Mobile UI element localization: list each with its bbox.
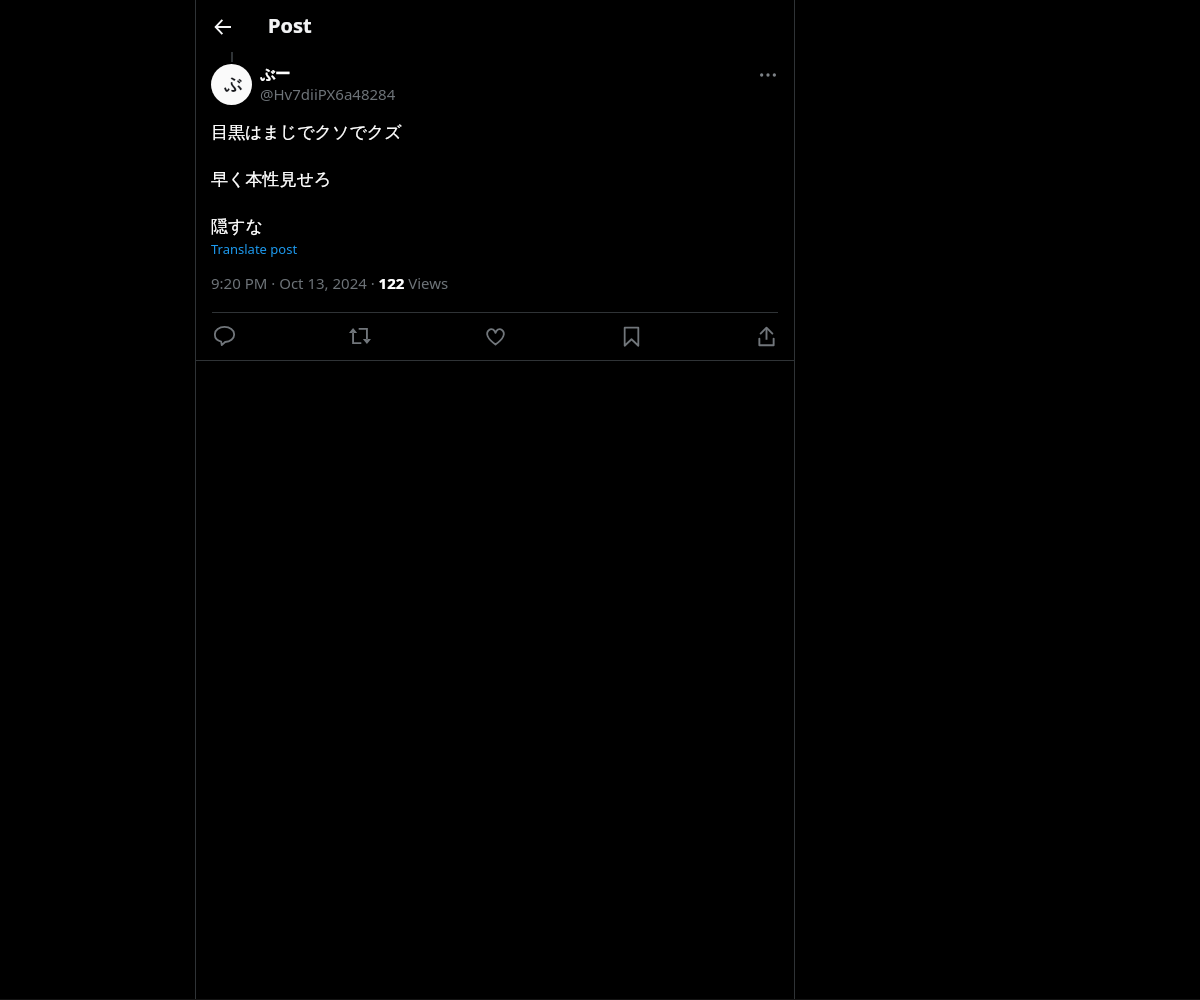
button[interactable]: More options [752,59,784,91]
button[interactable]: Repost [343,319,377,353]
button[interactable]: Bookmark [614,319,648,353]
button[interactable]: Share [749,319,783,353]
staticText: @Hv7diiPX6a48284 [260,84,396,104]
button[interactable]: Translate post [211,237,298,258]
staticText: 目黒はまじでクソでクズ 早く本性見せろ 隠すな [211,120,402,237]
button[interactable]: ぶー [260,65,396,104]
staticText: Translate post [211,240,298,258]
staticText: 9:20 PM · Oct 13, 2024 · 122 Views [211,273,449,293]
staticText: ぶ [224,73,243,96]
button[interactable]: Reply [207,319,241,353]
staticText: Post [268,12,312,39]
button[interactable]: Profile photo [211,64,252,105]
button[interactable]: Back [205,9,241,45]
button[interactable]: Like [478,319,512,353]
staticText: ぶー [260,65,291,84]
button[interactable]: Profile photo [195,52,795,312]
